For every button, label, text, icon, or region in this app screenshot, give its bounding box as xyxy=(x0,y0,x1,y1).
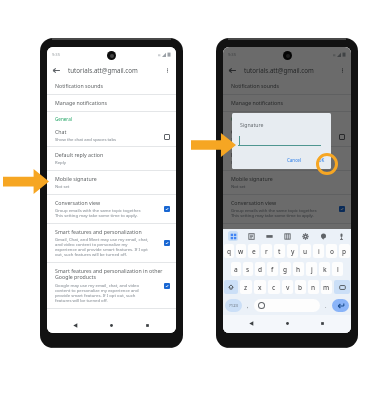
staticText: tutorials.att@gmail.com xyxy=(244,66,314,74)
staticText: Notification sounds xyxy=(231,82,280,89)
button[interactable]: a xyxy=(231,262,241,276)
button[interactable]: Notification sounds xyxy=(47,78,176,94)
button[interactable]: Chat xyxy=(47,127,176,146)
button[interactable]: u xyxy=(300,244,311,258)
staticText: j xyxy=(311,265,313,274)
button[interactable]: Back xyxy=(52,66,61,75)
button[interactable]: Manage notifications xyxy=(223,95,351,111)
button[interactable]: Recents xyxy=(318,319,327,328)
button[interactable]: Back xyxy=(247,319,256,328)
staticText: Group emails with the same topic togethe… xyxy=(55,207,150,218)
button[interactable]: ?123 xyxy=(225,299,242,312)
button[interactable]: Back xyxy=(71,321,80,330)
button[interactable]: k xyxy=(319,262,330,276)
staticText: . xyxy=(325,302,327,309)
button[interactable]: v xyxy=(282,280,293,294)
staticText: Chat xyxy=(55,128,67,135)
button[interactable]: More options xyxy=(338,66,347,75)
button[interactable]: Unchecked xyxy=(164,134,170,140)
staticText: w xyxy=(238,247,244,256)
button[interactable]: m xyxy=(321,280,332,294)
button[interactable]: Keyboard tool 2 xyxy=(264,231,274,241)
button[interactable]: OK xyxy=(316,157,327,163)
button[interactable]: w xyxy=(236,244,246,258)
button[interactable]: h xyxy=(293,262,304,276)
button[interactable]: x xyxy=(254,280,266,294)
button[interactable]: Checked xyxy=(164,283,170,289)
button[interactable]: Keyboard tool 6 xyxy=(336,231,346,241)
staticText: General xyxy=(55,116,72,122)
button[interactable]: Chat xyxy=(223,127,351,146)
staticText: , xyxy=(247,302,249,309)
button[interactable]: Back xyxy=(228,66,237,75)
button[interactable]: Conversation view xyxy=(47,195,176,223)
button[interactable]: Home xyxy=(283,319,292,328)
staticText: 9:35 xyxy=(228,52,236,57)
button[interactable]: Manage notifications xyxy=(47,95,176,111)
staticText: k xyxy=(323,265,327,274)
button[interactable]: z xyxy=(240,280,252,294)
staticText: Signature xyxy=(240,121,264,128)
button[interactable]: Checked xyxy=(164,206,170,212)
button[interactable]: c xyxy=(268,280,280,294)
staticText: o xyxy=(330,247,334,256)
button[interactable]: Unchecked xyxy=(339,134,345,140)
button[interactable]: s xyxy=(243,262,253,276)
button[interactable]: Keyboard tool 0 xyxy=(228,231,238,241)
button[interactable]: e xyxy=(248,244,259,258)
staticText: h xyxy=(296,265,301,274)
staticText: q xyxy=(227,247,232,256)
button[interactable]: t xyxy=(274,244,285,258)
button[interactable]: Home xyxy=(107,321,116,330)
staticText: Mobile signature xyxy=(55,175,97,182)
button[interactable]: More options xyxy=(163,66,172,75)
button[interactable]: Checked xyxy=(339,206,345,212)
button[interactable]: q xyxy=(224,244,234,258)
button[interactable]: Notification sounds xyxy=(223,78,351,94)
button[interactable]: Keyboard tool 4 xyxy=(300,231,310,241)
button[interactable]: Space xyxy=(254,299,320,312)
button[interactable]: f xyxy=(267,262,278,276)
button[interactable]: Checked xyxy=(164,240,170,246)
button[interactable]: d xyxy=(255,262,265,276)
button[interactable]: Keyboard tool 1 xyxy=(246,231,256,241)
button[interactable]: j xyxy=(306,262,317,276)
button[interactable]: Mobile signature xyxy=(223,171,351,194)
button[interactable]: l xyxy=(332,262,343,276)
button[interactable]: Shift xyxy=(224,280,238,294)
staticText: p xyxy=(342,247,347,256)
button[interactable]: Cancel xyxy=(285,157,304,163)
button[interactable]: Mobile signature xyxy=(47,171,176,194)
button[interactable]: Period xyxy=(320,299,332,312)
staticText: z xyxy=(244,283,248,292)
button[interactable]: o xyxy=(326,244,337,258)
button[interactable]: b xyxy=(295,280,306,294)
staticText: l xyxy=(337,265,339,274)
button[interactable]: r xyxy=(261,244,272,258)
staticText: Mobile signature xyxy=(231,175,273,182)
button[interactable]: Smart features and personalization xyxy=(47,224,176,262)
staticText: Manage notifications xyxy=(231,99,283,106)
button[interactable]: g xyxy=(280,262,291,276)
staticText: u xyxy=(303,247,308,256)
staticText: Smart features and personalization in ot… xyxy=(55,267,168,281)
button[interactable]: Keyboard tool 3 xyxy=(282,231,292,241)
button[interactable]: Smart features and personalization in ot… xyxy=(47,263,176,308)
button[interactable]: Comma xyxy=(242,299,254,312)
button[interactable]: n xyxy=(308,280,319,294)
button[interactable]: Default reply action xyxy=(47,147,176,170)
button[interactable]: Conversation view xyxy=(223,195,351,223)
button[interactable]: y xyxy=(287,244,298,258)
button[interactable]: i xyxy=(313,244,324,258)
button[interactable]: Default reply action xyxy=(223,147,351,170)
button[interactable]: Backspace xyxy=(334,280,350,294)
staticText: ?123 xyxy=(229,303,239,309)
staticText: General xyxy=(231,116,248,122)
staticText: v xyxy=(286,283,290,292)
button[interactable]: Keyboard tool 5 xyxy=(318,231,328,241)
button[interactable]: Enter xyxy=(332,299,349,312)
button[interactable]: p xyxy=(339,244,350,258)
staticText: n xyxy=(311,283,316,292)
staticText: Default reply action xyxy=(55,151,104,158)
button[interactable]: Recents xyxy=(143,321,152,330)
